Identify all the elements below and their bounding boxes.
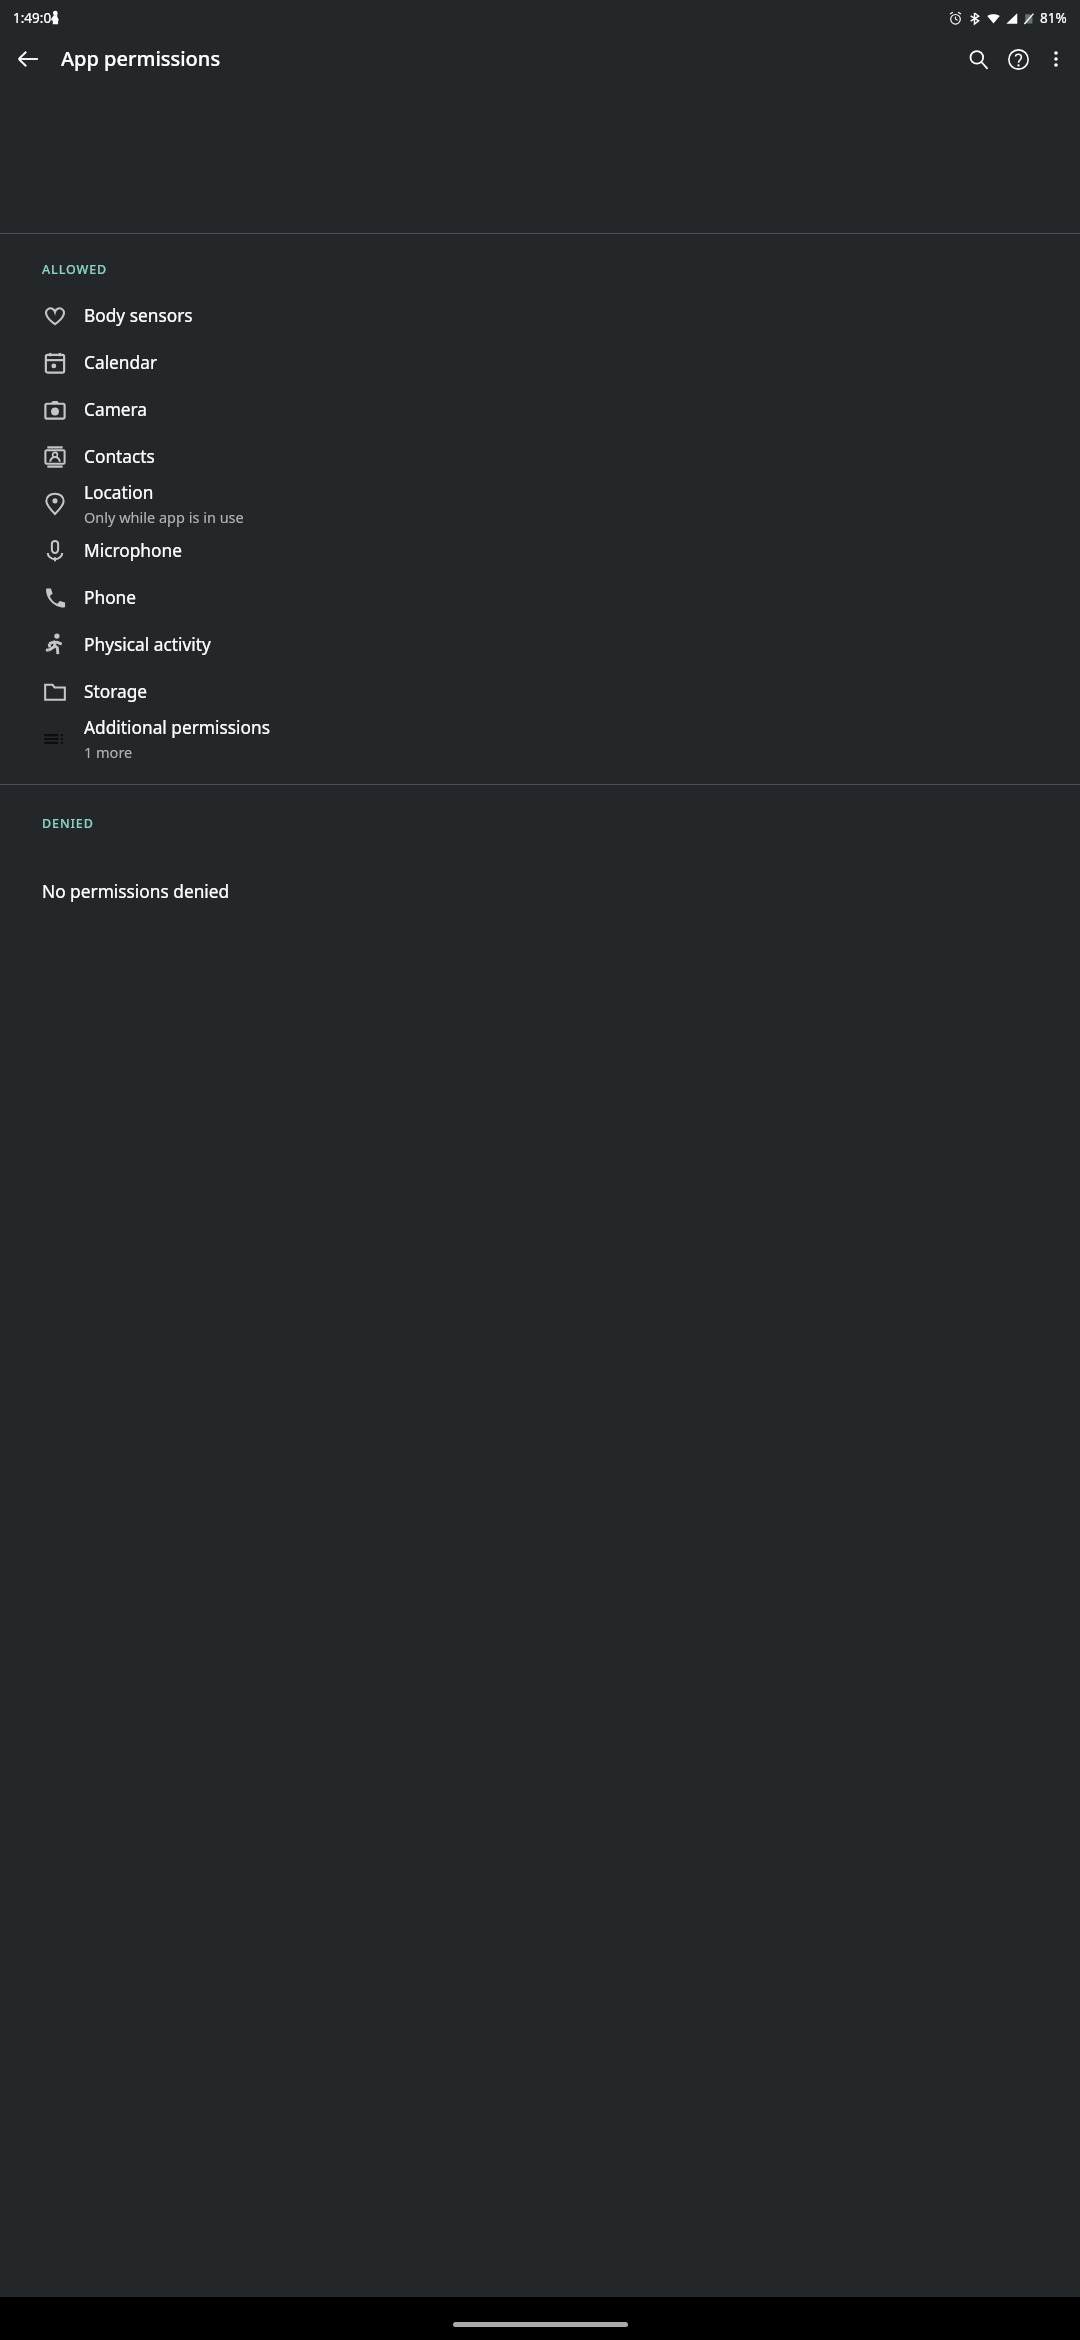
button[interactable]: Calendar — [0, 339, 1080, 386]
staticText: Location — [84, 481, 154, 505]
button[interactable]: Storage — [0, 668, 1080, 715]
button[interactable]: Search — [958, 39, 998, 79]
button[interactable]: Additional permissions — [0, 715, 1080, 762]
button[interactable]: Physical activity — [0, 621, 1080, 668]
staticText: DENIED — [42, 815, 94, 832]
staticText: 81% — [1040, 9, 1067, 27]
staticText: App permissions — [61, 45, 221, 72]
staticText: 1 more — [84, 742, 133, 762]
button[interactable]: Location — [0, 480, 1080, 527]
staticText: Physical activity — [84, 633, 211, 657]
staticText: Contacts — [84, 445, 155, 469]
button[interactable]: Phone — [0, 574, 1080, 621]
staticText: No permissions denied — [42, 880, 230, 904]
button[interactable]: Camera — [0, 386, 1080, 433]
staticText: Storage — [84, 680, 148, 704]
button[interactable]: Help — [998, 39, 1038, 79]
staticText: Phone — [84, 586, 137, 610]
button[interactable]: Microphone — [0, 527, 1080, 574]
staticText: Camera — [84, 398, 148, 422]
staticText: Calendar — [84, 351, 158, 375]
staticText: Only while app is in use — [84, 507, 244, 527]
staticText: Microphone — [84, 539, 182, 563]
button[interactable]: Back — [8, 39, 48, 79]
button[interactable]: No permissions denied — [0, 862, 1080, 922]
staticText: Body sensors — [84, 304, 193, 328]
staticText: Additional permissions — [84, 716, 270, 740]
staticText: ALLOWED — [42, 261, 108, 278]
button[interactable]: Body sensors — [0, 292, 1080, 339]
staticText: 1:49:04 — [13, 9, 59, 27]
button[interactable]: Contacts — [0, 433, 1080, 480]
button[interactable]: More options — [1038, 41, 1074, 77]
